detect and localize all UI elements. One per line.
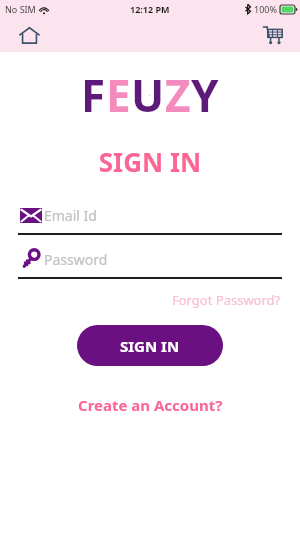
button[interactable]: Forgot Password? [170,288,283,312]
staticText: 100% [254,3,277,15]
staticText: 12:12 PM [130,3,170,15]
staticText: SIGN IN [0,144,300,179]
staticText: No SIM [5,3,36,15]
staticText: F [81,65,106,125]
button[interactable]: Cart [260,22,286,48]
staticText: Email Id [44,206,97,225]
staticText: Z [165,65,191,125]
button[interactable]: Home [16,22,42,48]
staticText: FE [149,95,151,96]
staticText: E [106,65,131,125]
button[interactable]: Create an Account? [74,391,227,419]
button[interactable]: SIGN IN [77,325,223,366]
staticText: Password [44,250,108,269]
staticText: Y [191,65,219,125]
staticText: SIGN IN [120,336,180,356]
staticText: U [131,65,165,125]
